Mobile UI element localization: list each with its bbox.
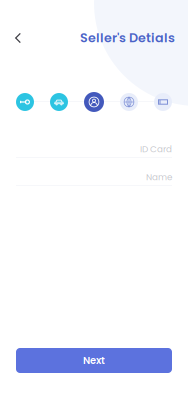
button[interactable]: Key step (16, 93, 34, 111)
button[interactable]: Back (5, 25, 31, 51)
button[interactable]: Vehicle step (50, 93, 68, 111)
staticText: Name (146, 171, 172, 183)
button[interactable]: Next (16, 348, 172, 373)
staticText: ID Card (140, 143, 172, 155)
staticText: Seller's Detials (80, 29, 175, 47)
button[interactable]: Location step (120, 93, 138, 111)
button[interactable]: Payment step (154, 93, 172, 111)
button[interactable]: Seller details step (84, 92, 104, 112)
staticText: Next (83, 354, 105, 367)
